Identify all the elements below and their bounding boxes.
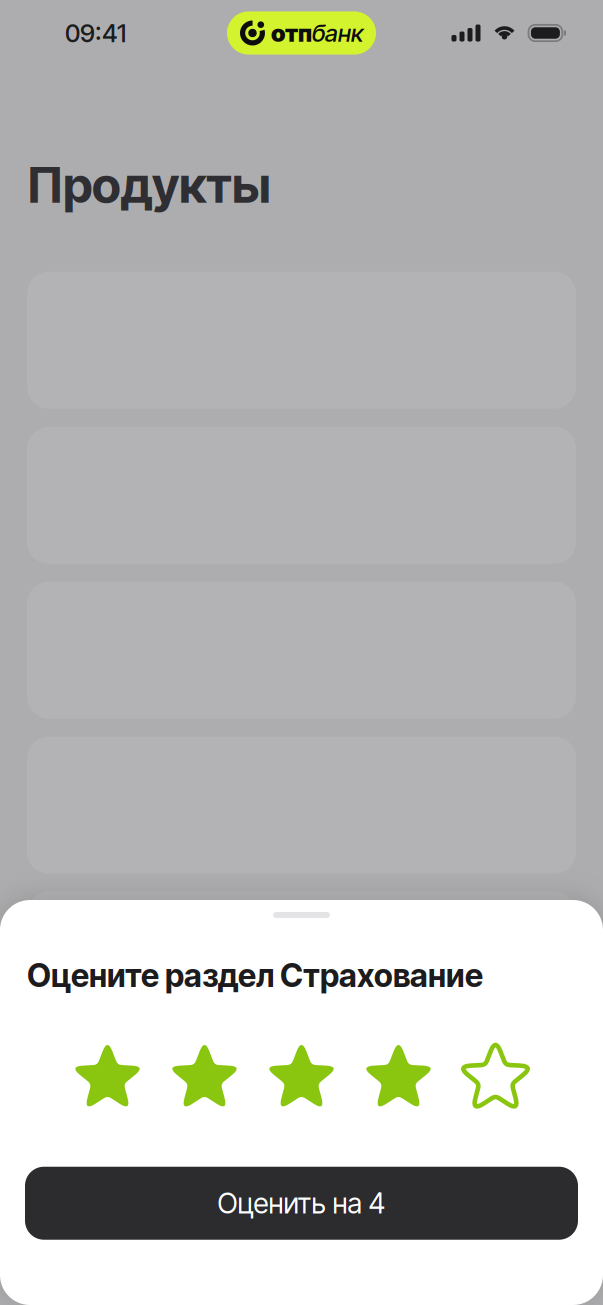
button[interactable]: Оценить на 4	[358, 1039, 438, 1119]
staticText: Оцените раздел Страхование	[27, 956, 483, 995]
staticText: Продукты	[27, 155, 271, 215]
staticText: 09:41	[65, 18, 126, 48]
button[interactable]: Оценить на 1	[67, 1039, 147, 1119]
button[interactable]: Оценить на 4	[25, 1167, 578, 1240]
staticText: банк	[312, 18, 363, 47]
staticText: отп	[271, 18, 312, 47]
button[interactable]: Оценить на 3	[261, 1039, 341, 1119]
button[interactable]: Оценить на 5	[455, 1039, 535, 1119]
staticText: Оценить на 4	[217, 1186, 385, 1220]
button[interactable]: Оценить на 2	[164, 1039, 244, 1119]
